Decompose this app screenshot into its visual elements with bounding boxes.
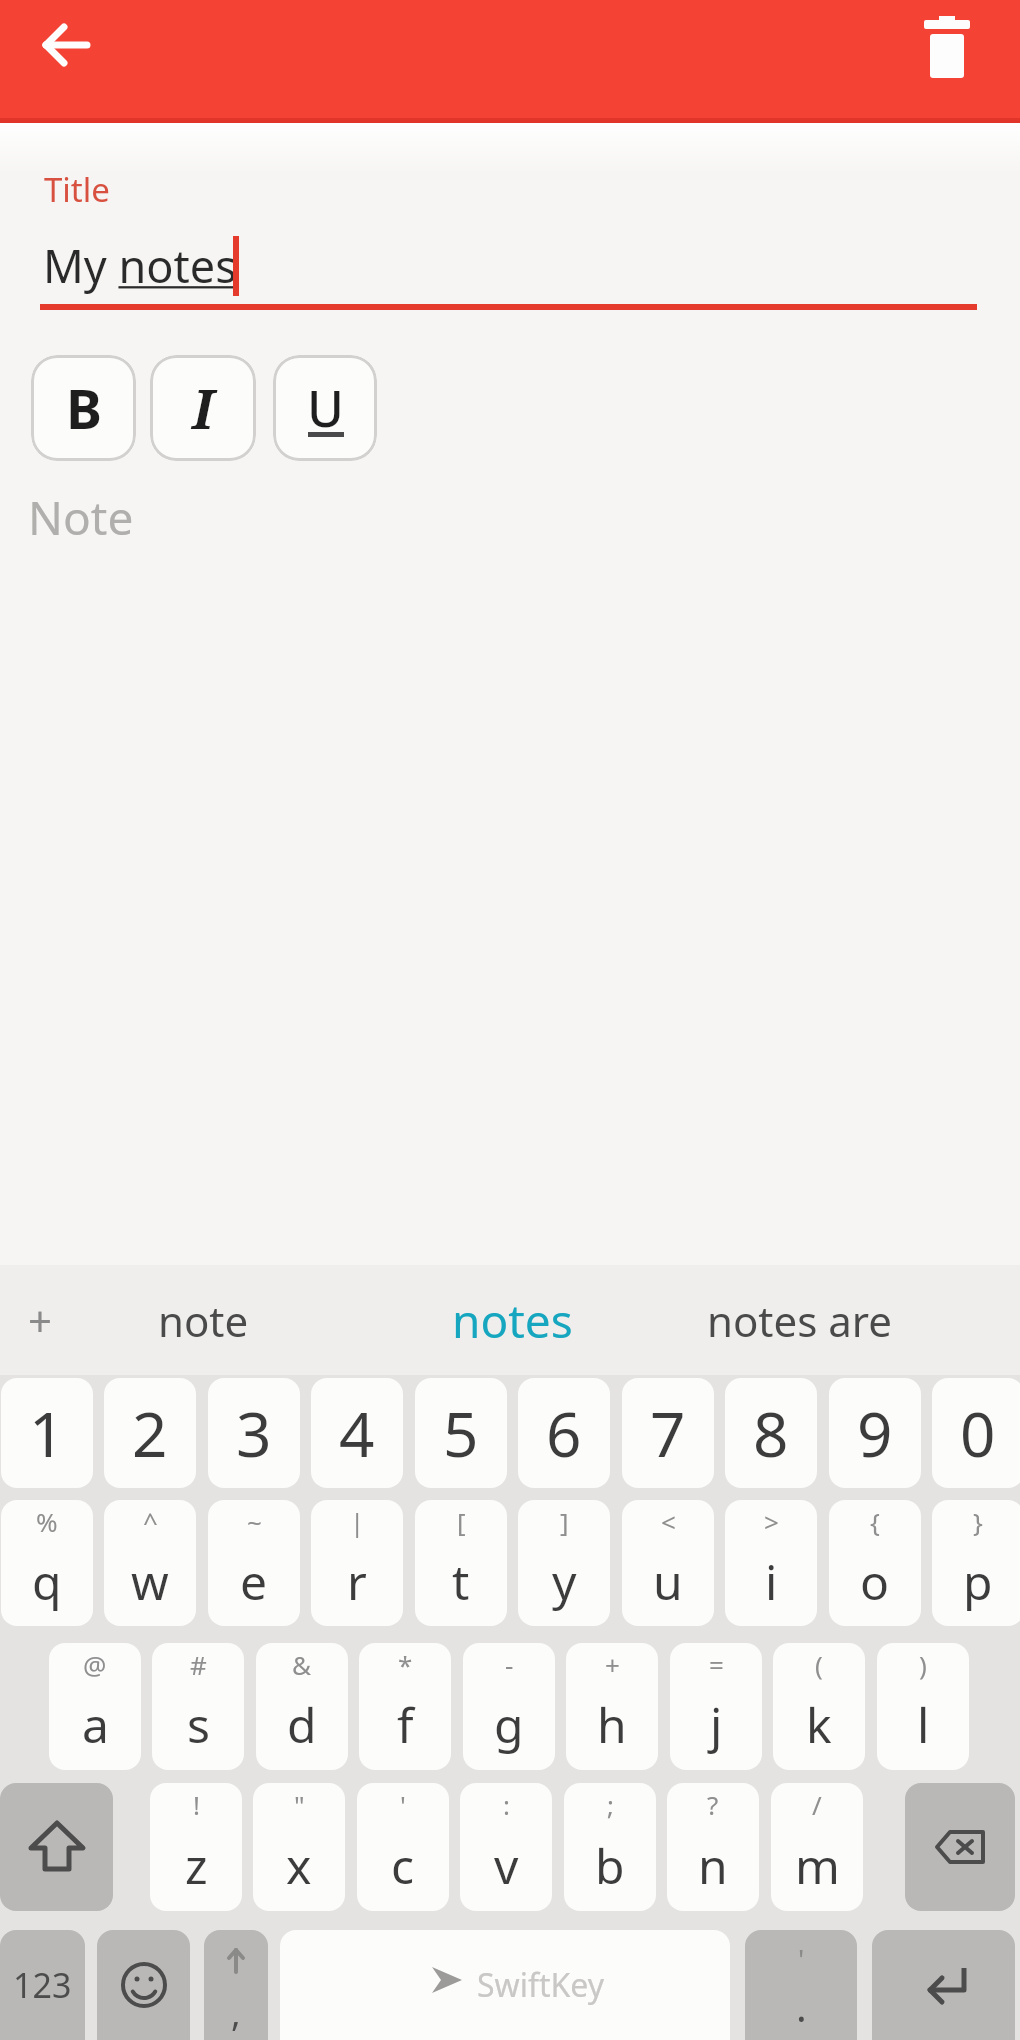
- staticText: (: [815, 1647, 823, 1682]
- button[interactable]: notes: [430, 1285, 595, 1355]
- staticText: #: [190, 1647, 207, 1682]
- staticText: Note: [28, 486, 134, 549]
- button[interactable]: [26, 5, 106, 85]
- button[interactable]: 4: [311, 1378, 403, 1488]
- staticText: <: [661, 1504, 676, 1539]
- button[interactable]: 2: [104, 1378, 196, 1488]
- staticText: 8: [753, 1391, 789, 1475]
- staticText: v: [494, 1833, 519, 1898]
- button[interactable]: |: [311, 1500, 403, 1626]
- staticText: s: [187, 1692, 210, 1757]
- button[interactable]: [872, 1930, 1015, 2040]
- button[interactable]: /: [771, 1783, 863, 1911]
- button[interactable]: 9: [829, 1378, 921, 1488]
- staticText: y: [552, 1549, 577, 1614]
- button[interactable]: (: [773, 1643, 865, 1770]
- button[interactable]: ): [877, 1643, 969, 1770]
- staticText: 123: [13, 1962, 72, 2008]
- staticText: ,: [231, 1988, 241, 2037]
- button[interactable]: Note: [22, 480, 998, 600]
- button[interactable]: [905, 1783, 1015, 1911]
- button[interactable]: ~: [208, 1500, 300, 1626]
- staticText: *: [398, 1647, 413, 1682]
- staticText: q: [32, 1549, 62, 1614]
- staticText: p: [963, 1549, 993, 1614]
- staticText: ': [400, 1787, 406, 1822]
- button[interactable]: ": [253, 1783, 345, 1911]
- button[interactable]: @: [49, 1643, 141, 1770]
- button[interactable]: =: [670, 1643, 762, 1770]
- staticText: 5: [443, 1391, 479, 1475]
- staticText: j: [710, 1692, 723, 1757]
- button[interactable]: ^: [104, 1500, 196, 1626]
- button[interactable]: }: [932, 1500, 1020, 1626]
- button[interactable]: ]: [518, 1500, 610, 1626]
- staticText: &: [292, 1647, 312, 1682]
- button[interactable]: ': [745, 1930, 857, 2040]
- staticText: h: [597, 1692, 627, 1757]
- button[interactable]: 7: [622, 1378, 714, 1488]
- button[interactable]: >: [725, 1500, 817, 1626]
- staticText: =: [709, 1647, 724, 1682]
- button[interactable]: note: [130, 1285, 276, 1355]
- button[interactable]: +: [566, 1643, 658, 1770]
- button[interactable]: U: [273, 355, 377, 461]
- button[interactable]: -: [463, 1643, 555, 1770]
- button[interactable]: 123: [0, 1930, 85, 2040]
- button[interactable]: +: [10, 1290, 70, 1350]
- staticText: ;: [607, 1787, 614, 1822]
- button[interactable]: #: [152, 1643, 244, 1770]
- button[interactable]: :: [460, 1783, 552, 1911]
- staticText: -: [505, 1647, 514, 1682]
- staticText: x: [286, 1833, 312, 1898]
- button[interactable]: 1: [1, 1378, 93, 1488]
- button[interactable]: {: [829, 1500, 921, 1626]
- staticText: ~: [247, 1504, 262, 1539]
- button[interactable]: ': [357, 1783, 449, 1911]
- button[interactable]: SwiftKey: [280, 1930, 730, 2040]
- button[interactable]: ,: [204, 1930, 268, 2040]
- button[interactable]: <: [622, 1500, 714, 1626]
- button[interactable]: 8: [725, 1378, 817, 1488]
- button[interactable]: 5: [415, 1378, 507, 1488]
- staticText: c: [391, 1833, 415, 1898]
- button[interactable]: 0: [932, 1378, 1020, 1488]
- staticText: %: [36, 1504, 58, 1539]
- button[interactable]: [0, 1783, 113, 1911]
- staticText: +: [28, 1292, 53, 1349]
- staticText: |: [350, 1504, 365, 1539]
- staticText: z: [185, 1833, 208, 1898]
- staticText: n: [698, 1833, 728, 1898]
- staticText: ": [294, 1787, 305, 1822]
- button[interactable]: B: [31, 355, 136, 461]
- button[interactable]: My notes: [40, 225, 977, 310]
- staticText: {: [870, 1504, 880, 1539]
- staticText: 2: [132, 1391, 168, 1475]
- button[interactable]: I: [150, 355, 256, 461]
- button[interactable]: [906, 5, 988, 87]
- button[interactable]: ?: [667, 1783, 759, 1911]
- staticText: l: [917, 1692, 930, 1757]
- button[interactable]: [97, 1930, 190, 2040]
- staticText: e: [240, 1549, 268, 1614]
- staticText: 3: [236, 1391, 272, 1475]
- button[interactable]: %: [1, 1500, 93, 1626]
- staticText: :: [503, 1787, 510, 1822]
- staticText: u: [653, 1549, 683, 1614]
- button[interactable]: ;: [564, 1783, 656, 1911]
- staticText: 6: [546, 1391, 582, 1475]
- staticText: Title: [44, 167, 110, 212]
- button[interactable]: &: [256, 1643, 348, 1770]
- button[interactable]: !: [150, 1783, 242, 1911]
- staticText: t: [452, 1549, 470, 1614]
- staticText: notes are: [707, 1292, 893, 1349]
- button[interactable]: 3: [208, 1378, 300, 1488]
- button[interactable]: *: [359, 1643, 451, 1770]
- staticText: i: [765, 1549, 778, 1614]
- staticText: f: [397, 1692, 414, 1757]
- button[interactable]: [: [415, 1500, 507, 1626]
- staticText: /: [812, 1787, 822, 1822]
- staticText: b: [595, 1833, 625, 1898]
- button[interactable]: notes are: [700, 1285, 900, 1355]
- button[interactable]: 6: [518, 1378, 610, 1488]
